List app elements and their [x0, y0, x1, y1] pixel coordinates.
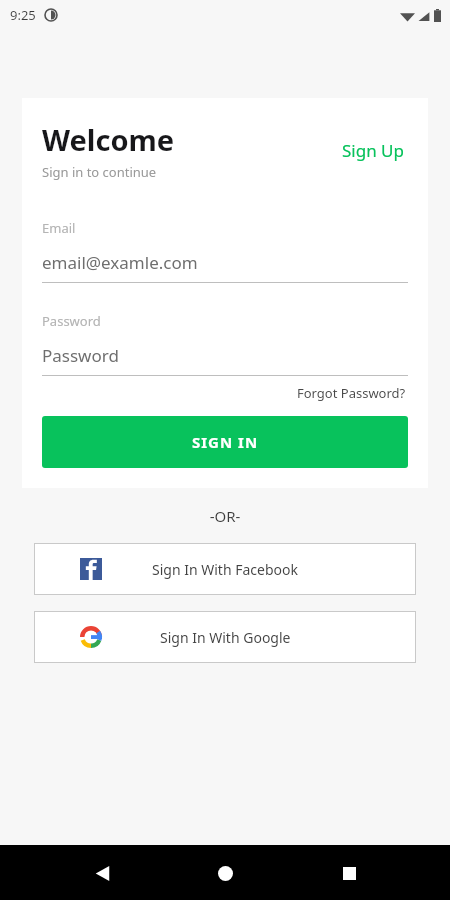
- staticText: Password: [42, 312, 101, 330]
- staticText: Sign Up: [342, 139, 404, 162]
- staticText: Forgot Password?: [297, 384, 406, 402]
- button[interactable]: Back: [80, 851, 124, 895]
- staticText: SIGN IN: [192, 432, 259, 452]
- button[interactable]: Sign In With Facebook: [34, 543, 416, 595]
- button[interactable]: Forgot Password?: [295, 382, 408, 404]
- staticText: Email: [42, 219, 76, 237]
- staticText: Sign in to continue: [42, 163, 157, 181]
- button[interactable]: Sign In With Google: [34, 611, 416, 663]
- staticText: Sign In With Facebook: [152, 560, 298, 579]
- staticText: -OR-: [0, 506, 450, 526]
- staticText: 9:25: [10, 6, 36, 24]
- button[interactable]: Home: [203, 851, 247, 895]
- button[interactable]: Recents: [327, 851, 371, 895]
- button[interactable]: SIGN IN: [42, 416, 408, 468]
- button[interactable]: Password: [42, 312, 408, 376]
- button[interactable]: Sign Up: [338, 135, 408, 166]
- button[interactable]: Email: [42, 219, 408, 283]
- staticText: email@examle.com: [42, 251, 198, 274]
- staticText: Sign In With Google: [160, 628, 291, 647]
- staticText: Welcome: [42, 120, 175, 159]
- staticText: Password: [42, 344, 119, 367]
